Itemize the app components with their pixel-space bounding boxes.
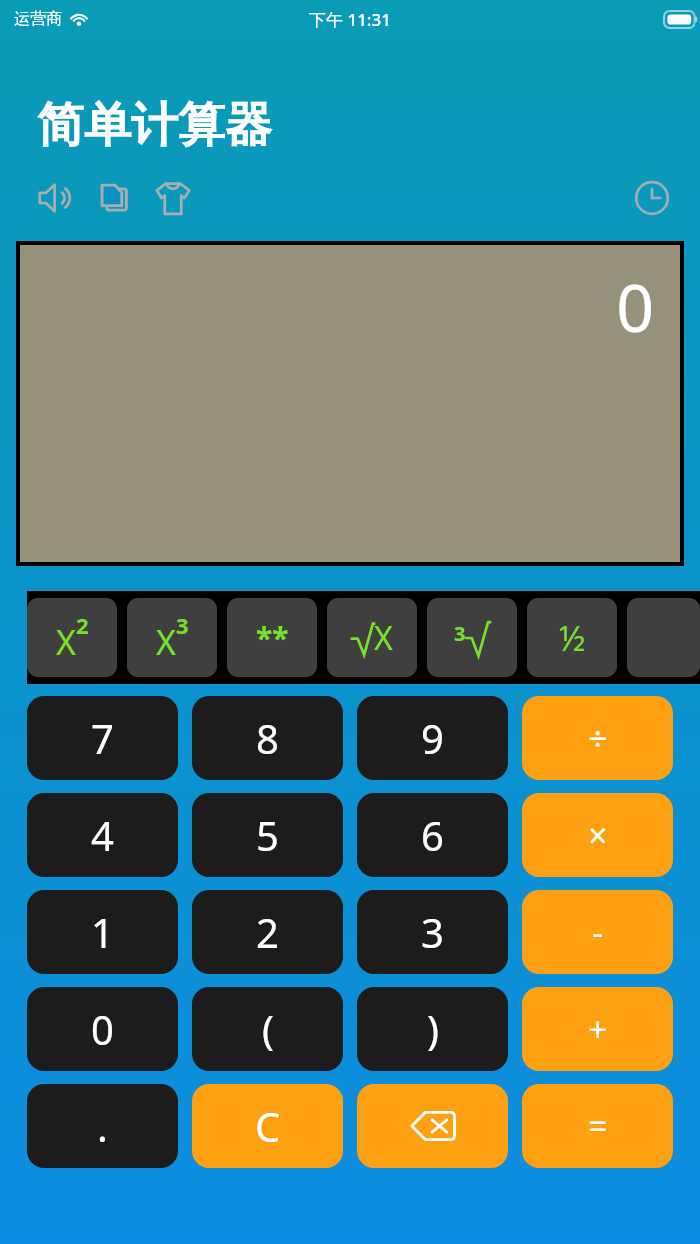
staticText: **	[256, 617, 289, 658]
staticText: 5	[256, 808, 279, 862]
button[interactable]: -	[522, 890, 673, 974]
staticText: 8	[256, 711, 279, 765]
button[interactable]: Copy	[86, 175, 144, 221]
button[interactable]: 4	[27, 793, 178, 877]
staticText: 6	[421, 808, 444, 862]
staticText: 9	[421, 711, 444, 765]
staticText: =	[588, 1103, 608, 1149]
button[interactable]: **	[227, 598, 317, 677]
button[interactable]: =	[522, 1084, 673, 1168]
button[interactable]: 6	[357, 793, 508, 877]
button[interactable]: 7	[27, 696, 178, 780]
button[interactable]: X	[127, 598, 217, 677]
button[interactable]: History	[626, 175, 678, 221]
staticText: +	[588, 1006, 608, 1052]
staticText: 3	[176, 610, 189, 640]
staticText: 4	[91, 808, 114, 862]
staticText: (	[262, 1002, 274, 1056]
staticText: X	[374, 616, 393, 660]
button[interactable]: (	[192, 987, 343, 1071]
staticText: X	[156, 619, 176, 665]
staticText: ×	[588, 812, 608, 858]
button[interactable]: 3	[427, 598, 517, 677]
button[interactable]: Sound	[28, 175, 86, 221]
staticText: 2	[76, 610, 89, 640]
staticText: 2	[256, 905, 279, 959]
button[interactable]: ÷	[522, 696, 673, 780]
button[interactable]: 0	[27, 987, 178, 1071]
button[interactable]: ×	[522, 793, 673, 877]
button[interactable]: C	[192, 1084, 343, 1168]
button[interactable]: 0	[20, 245, 680, 562]
staticText: ÷	[588, 715, 608, 761]
button[interactable]: .	[27, 1084, 178, 1168]
staticText: 1	[91, 905, 114, 959]
button[interactable]	[627, 598, 700, 677]
staticText: 下午 11:31	[309, 8, 391, 31]
button[interactable]: X	[327, 598, 417, 677]
staticText: 0	[91, 1002, 114, 1056]
staticText: 运营商	[14, 9, 62, 29]
button[interactable]: ½	[527, 598, 617, 677]
button[interactable]: +	[522, 987, 673, 1071]
staticText: 7	[91, 711, 114, 765]
staticText: 简单计算器	[37, 96, 272, 155]
button[interactable]: Backspace	[357, 1084, 508, 1168]
button[interactable]: 1	[27, 890, 178, 974]
staticText: )	[427, 1002, 439, 1056]
button[interactable]: X	[27, 598, 117, 677]
staticText: C	[255, 1099, 281, 1153]
staticText: .	[97, 1099, 108, 1153]
button[interactable]: 5	[192, 793, 343, 877]
staticText: 3	[454, 620, 466, 647]
button[interactable]: 3	[357, 890, 508, 974]
button[interactable]: Theme	[144, 175, 202, 221]
button[interactable]: 8	[192, 696, 343, 780]
staticText: -	[592, 909, 603, 955]
staticText: ½	[559, 615, 586, 661]
staticText: 3	[421, 905, 444, 959]
button[interactable]: 9	[357, 696, 508, 780]
button[interactable]: )	[357, 987, 508, 1071]
staticText: 0	[616, 261, 654, 351]
button[interactable]: 2	[192, 890, 343, 974]
staticText: X	[56, 619, 76, 665]
